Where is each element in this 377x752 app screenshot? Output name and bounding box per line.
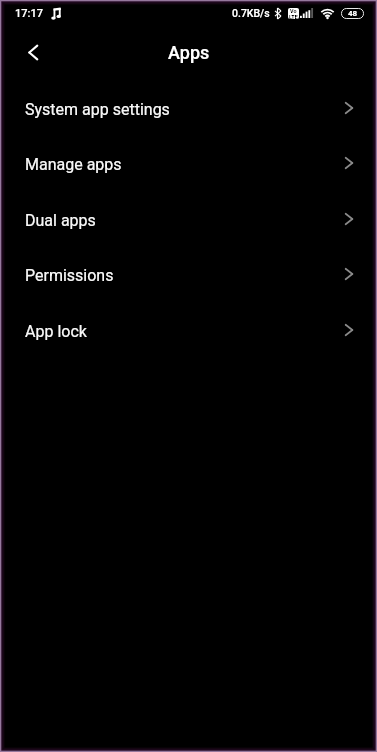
button[interactable]: Dual apps [0, 193, 377, 248]
button[interactable]: System app settings [0, 82, 377, 137]
staticText: Vo [290, 8, 297, 14]
button[interactable]: Back [11, 26, 55, 78]
button[interactable]: Manage apps [0, 137, 377, 192]
staticText: Apps [168, 42, 210, 63]
staticText: App lock [25, 322, 87, 341]
staticText: System app settings [25, 100, 170, 119]
staticText: 0.7KB/s [232, 7, 270, 19]
staticText: Manage apps [25, 155, 122, 174]
staticText: Dual apps [25, 211, 96, 230]
staticText: Permissions [25, 266, 114, 285]
staticText: 48 [348, 9, 358, 18]
button[interactable]: App lock [0, 304, 377, 359]
staticText: LTE [289, 14, 298, 19]
staticText: 17:17 [15, 7, 43, 20]
button[interactable]: Permissions [0, 248, 377, 303]
